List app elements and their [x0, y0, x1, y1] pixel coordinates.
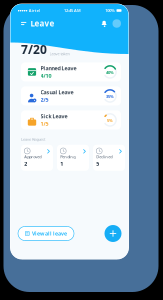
staticText: Declined [96, 154, 112, 159]
staticText: 7/20 [21, 41, 47, 57]
staticText: 5 [96, 160, 99, 167]
staticText: Sick Leave [40, 113, 67, 120]
staticText: 1/5 [40, 120, 48, 127]
button[interactable]: Planned Leave [21, 62, 121, 81]
staticText: 2 [24, 160, 27, 167]
staticText: View all leave [32, 230, 67, 237]
button[interactable]: Casual Leave [21, 86, 121, 105]
button[interactable]: Profile [112, 19, 121, 28]
button[interactable]: Menu [21, 21, 26, 25]
button[interactable]: Add leave [104, 225, 121, 242]
staticText: 4/10 [40, 72, 51, 79]
button[interactable]: Approved [21, 145, 53, 171]
staticText: Planned Leave [40, 65, 76, 72]
button[interactable]: Declined [93, 145, 125, 171]
button[interactable]: View all leave [18, 226, 74, 240]
button[interactable]: Notifications [100, 20, 107, 27]
staticText: Leave taken [49, 51, 69, 56]
button[interactable]: Pending [57, 145, 89, 171]
staticText: 1 [60, 160, 63, 167]
staticText: 35% [106, 94, 114, 99]
button[interactable]: Sick Leave [21, 110, 121, 129]
staticText: 5% [107, 118, 113, 123]
staticText: Leave [30, 18, 54, 29]
staticText: 100% [105, 8, 115, 13]
staticText: Leave Request [21, 136, 45, 142]
staticText: Airtel [29, 8, 40, 13]
staticText: 40% [106, 70, 114, 75]
staticText: Pending [60, 154, 75, 159]
staticText: ••••• [17, 7, 27, 14]
staticText: 12:45 AM [64, 8, 81, 13]
staticText: Approved [24, 154, 41, 159]
staticText: Casual Leave [40, 89, 73, 96]
staticText: 2/5 [40, 96, 48, 103]
